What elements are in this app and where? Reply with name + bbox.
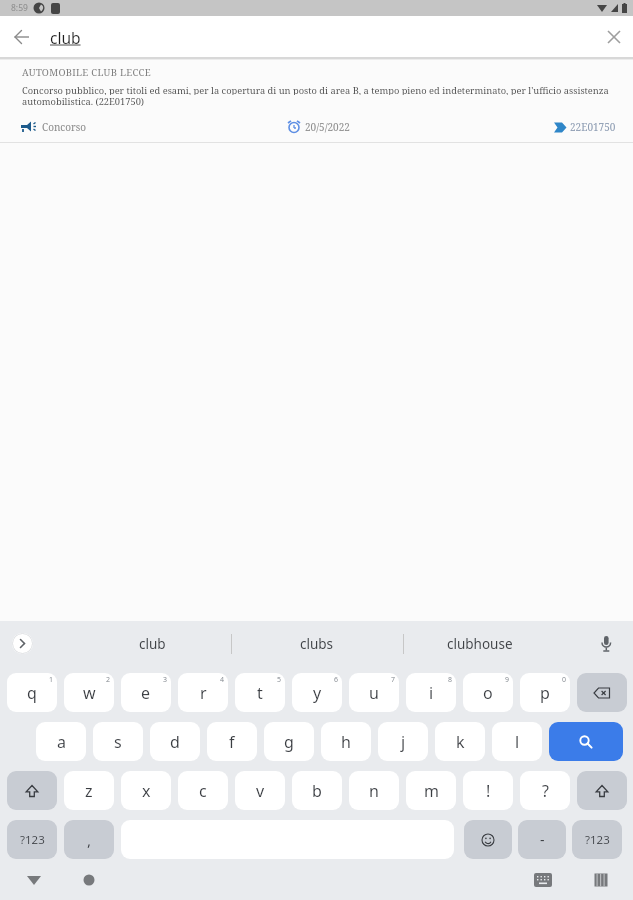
button[interactable]: f: [207, 722, 257, 761]
button[interactable]: [7, 771, 57, 810]
staticText: s: [114, 731, 122, 753]
staticText: 20/5/2022: [305, 120, 350, 134]
staticText: 5: [277, 675, 282, 685]
staticText: a: [57, 731, 66, 753]
staticText: 7: [391, 675, 396, 685]
button[interactable]: clubs: [232, 626, 402, 662]
staticText: o: [483, 682, 493, 704]
button[interactable]: g: [264, 722, 314, 761]
staticText: 3: [163, 675, 168, 685]
staticText: j: [401, 731, 406, 753]
button[interactable]: [577, 771, 627, 810]
staticText: club: [50, 27, 81, 48]
button[interactable]: p: [520, 673, 570, 712]
button[interactable]: y: [292, 673, 342, 712]
button[interactable]: r: [178, 673, 228, 712]
staticText: 8:59: [11, 2, 28, 14]
staticText: b: [312, 780, 322, 802]
staticText: w: [83, 682, 96, 704]
button[interactable]: club: [52, 626, 252, 662]
button[interactable]: [77, 868, 101, 892]
staticText: 6: [334, 675, 339, 685]
staticText: h: [341, 731, 351, 753]
button[interactable]: a: [36, 722, 86, 761]
button[interactable]: w: [64, 673, 114, 712]
staticText: t: [257, 682, 263, 704]
staticText: clubhouse: [447, 635, 513, 653]
staticText: clubs: [300, 635, 334, 653]
staticText: c: [199, 780, 207, 802]
button[interactable]: o: [463, 673, 513, 712]
button[interactable]: t: [235, 673, 285, 712]
button[interactable]: [594, 632, 618, 656]
staticText: q: [27, 682, 37, 704]
staticText: d: [170, 731, 180, 753]
staticText: 4: [220, 675, 225, 685]
button[interactable]: ?123: [7, 820, 57, 859]
button[interactable]: [8, 23, 36, 51]
button[interactable]: x: [121, 771, 171, 810]
button[interactable]: j: [378, 722, 428, 761]
staticText: club: [139, 635, 166, 653]
staticText: g: [284, 731, 294, 753]
button[interactable]: b: [292, 771, 342, 810]
staticText: 1: [49, 675, 54, 685]
button[interactable]: clubhouse: [404, 626, 556, 662]
button[interactable]: k: [435, 722, 485, 761]
button[interactable]: [589, 868, 613, 892]
staticText: -: [540, 830, 545, 849]
staticText: r: [200, 682, 207, 704]
button[interactable]: [577, 673, 627, 712]
button[interactable]: ?123: [572, 820, 622, 859]
button[interactable]: [464, 820, 512, 859]
staticText: ?: [542, 780, 549, 802]
button[interactable]: v: [235, 771, 285, 810]
button[interactable]: [549, 722, 623, 761]
staticText: n: [369, 780, 379, 802]
button[interactable]: m: [406, 771, 456, 810]
staticText: ?123: [20, 832, 45, 848]
staticText: 22E01750: [570, 120, 616, 134]
button[interactable]: [12, 633, 33, 654]
button[interactable]: i: [406, 673, 456, 712]
button[interactable]: [22, 868, 46, 892]
staticText: 9: [505, 675, 510, 685]
staticText: 0: [562, 675, 567, 685]
button[interactable]: -: [518, 820, 566, 859]
staticText: l: [515, 731, 520, 753]
button[interactable]: [531, 868, 555, 892]
staticText: u: [369, 682, 379, 704]
button[interactable]: z: [64, 771, 114, 810]
staticText: 8: [448, 675, 453, 685]
button[interactable]: n: [349, 771, 399, 810]
button[interactable]: c: [178, 771, 228, 810]
button[interactable]: ,: [64, 820, 114, 859]
staticText: i: [429, 682, 434, 704]
staticText: z: [85, 780, 93, 802]
staticText: 2: [106, 675, 111, 685]
staticText: k: [456, 731, 465, 753]
staticText: y: [313, 682, 322, 704]
button[interactable]: ?: [520, 771, 570, 810]
staticText: m: [424, 780, 439, 802]
button[interactable]: u: [349, 673, 399, 712]
staticText: f: [229, 731, 235, 753]
staticText: !: [486, 780, 491, 802]
staticText: automobilistica. (22E01750): [22, 95, 145, 106]
button[interactable]: s: [93, 722, 143, 761]
staticText: Concorso: [42, 120, 87, 134]
staticText: ,: [87, 830, 92, 850]
button[interactable]: !: [463, 771, 513, 810]
button[interactable]: d: [150, 722, 200, 761]
staticText: x: [142, 780, 151, 802]
staticText: e: [141, 682, 151, 704]
button[interactable]: q: [7, 673, 57, 712]
button[interactable]: e: [121, 673, 171, 712]
button[interactable]: l: [492, 722, 542, 761]
button[interactable]: [0, 59, 633, 143]
button[interactable]: [601, 24, 627, 50]
staticText: v: [256, 780, 265, 802]
button[interactable]: h: [321, 722, 371, 761]
staticText: Concorso pubblico, per titoli ed esami, …: [22, 84, 609, 95]
